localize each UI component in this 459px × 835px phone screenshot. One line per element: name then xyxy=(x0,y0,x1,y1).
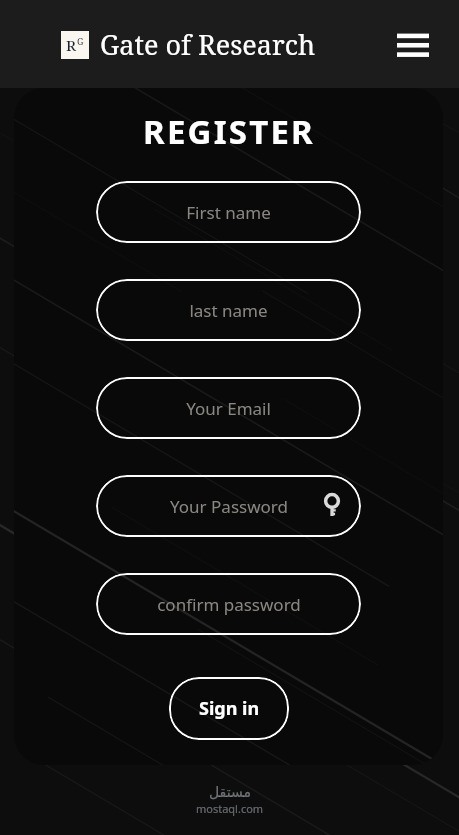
staticText: Your Email xyxy=(186,397,271,420)
staticText: Sign in xyxy=(199,696,260,721)
staticText: mostaql.com xyxy=(196,801,264,816)
staticText: confirm password xyxy=(157,593,301,616)
button[interactable]: Sign in xyxy=(169,677,289,740)
button[interactable]: Your Password xyxy=(96,475,361,537)
button[interactable]: First name xyxy=(96,181,361,243)
staticText: First name xyxy=(186,201,271,224)
staticText: مستقل xyxy=(209,784,251,800)
button[interactable]: Open navigation menu xyxy=(393,24,433,64)
staticText: R xyxy=(66,35,77,55)
staticText: Gate of Research xyxy=(100,26,316,63)
button[interactable]: Your Email xyxy=(96,377,361,439)
button[interactable]: confirm password xyxy=(96,573,361,635)
staticText: REGISTER xyxy=(143,109,315,154)
button[interactable]: last name xyxy=(96,279,361,341)
staticText: last name xyxy=(189,299,268,322)
staticText: Your Password xyxy=(170,495,288,518)
staticText: G xyxy=(77,35,84,47)
